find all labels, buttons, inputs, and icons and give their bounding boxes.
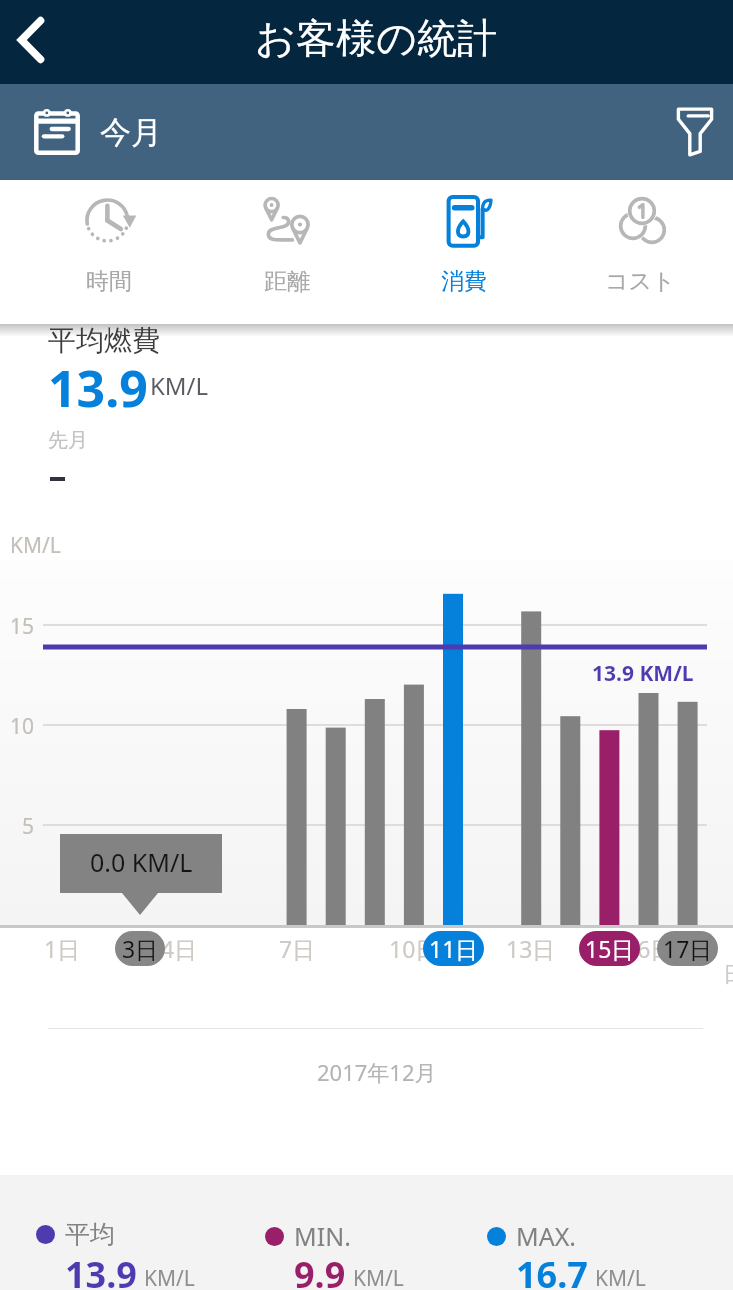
staticText: 先月 xyxy=(48,428,88,453)
staticText: コスト xyxy=(605,267,676,296)
staticText: MIN. xyxy=(294,1219,351,1253)
staticText: 10 xyxy=(10,712,35,741)
button[interactable]: MIN. xyxy=(265,1219,375,1268)
staticText: 平均 xyxy=(65,1219,115,1250)
staticText: 4日 xyxy=(161,933,198,964)
button[interactable]: Back xyxy=(0,7,70,77)
button[interactable]: 距離 xyxy=(199,180,375,324)
staticText: 13.9 xyxy=(65,1250,137,1290)
button[interactable]: 消費 xyxy=(376,180,552,324)
staticText: お客様の統計 xyxy=(255,13,497,63)
staticText: KM/L xyxy=(150,369,209,402)
staticText: 3日 xyxy=(122,933,159,964)
staticText: 9.9 xyxy=(294,1250,346,1290)
staticText: KM/L xyxy=(10,531,61,560)
button[interactable]: 平均 xyxy=(36,1219,166,1268)
button[interactable]: MAX. xyxy=(487,1219,617,1268)
button[interactable]: 時間 xyxy=(21,180,197,324)
staticText: 消費 xyxy=(441,267,487,296)
staticText: 17日 xyxy=(663,933,713,964)
staticText: KM/L xyxy=(353,1264,404,1290)
button[interactable]: コスト xyxy=(552,180,728,324)
staticText: 15 xyxy=(10,612,35,641)
staticText: 13.9 xyxy=(48,354,148,422)
staticText: 距離 xyxy=(264,267,310,296)
staticText: 今月 xyxy=(100,113,162,152)
staticText: 13日 xyxy=(506,933,556,964)
button[interactable]: 3日 xyxy=(115,931,165,966)
staticText: 10日 xyxy=(389,933,439,964)
button[interactable]: 15日 xyxy=(579,931,640,966)
button[interactable]: Filter xyxy=(637,84,733,180)
staticText: 13.9 KM/L xyxy=(592,659,694,688)
staticText: 平均燃費 xyxy=(48,323,160,358)
staticText: MAX. xyxy=(516,1219,577,1253)
staticText: 時間 xyxy=(86,267,132,296)
staticText: KM/L xyxy=(144,1264,195,1290)
staticText: KM/L xyxy=(595,1264,646,1290)
staticText: 日 xyxy=(723,961,733,989)
staticText: 16.7 xyxy=(516,1250,588,1290)
button[interactable]: 今月 xyxy=(0,84,182,180)
button[interactable]: 11日 xyxy=(423,931,484,966)
staticText: 7日 xyxy=(279,933,316,964)
staticText: 5 xyxy=(22,812,35,841)
staticText: 0.0 KM/L xyxy=(90,845,193,879)
button[interactable]: 17日 xyxy=(657,931,718,966)
staticText: 11日 xyxy=(429,933,479,964)
staticText: 15日 xyxy=(585,933,635,964)
staticText: 1日 xyxy=(44,933,81,964)
staticText: 16日 xyxy=(624,933,674,964)
staticText: 2017年12月 xyxy=(317,1057,437,1087)
